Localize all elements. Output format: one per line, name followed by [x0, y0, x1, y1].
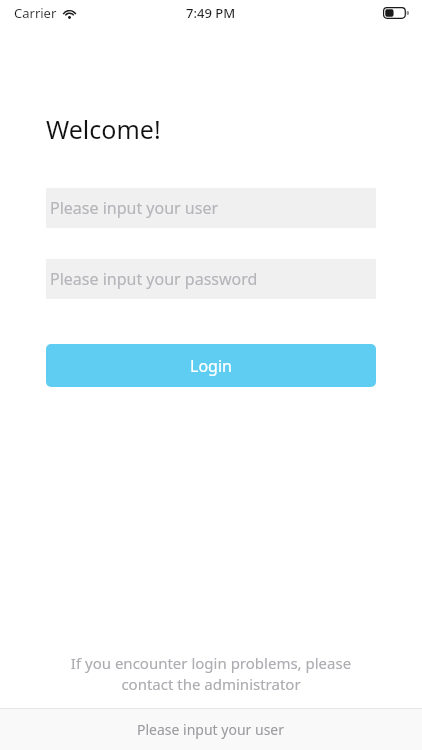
staticText: 7:49 PM	[186, 4, 236, 22]
staticText: Please input your user	[137, 720, 285, 739]
staticText: If you encounter login problems, please …	[30, 653, 392, 695]
button[interactable]: Please input your user	[46, 188, 376, 228]
staticText: Welcome!	[46, 112, 161, 146]
staticText: Please input your user	[50, 197, 219, 219]
button[interactable]: Please input your user	[0, 708, 422, 750]
staticText: Carrier	[14, 4, 57, 22]
button[interactable]: Please input your password	[46, 259, 376, 299]
staticText: Please input your password	[50, 268, 258, 290]
button[interactable]: Login	[46, 344, 376, 387]
staticText: Login	[190, 355, 232, 377]
